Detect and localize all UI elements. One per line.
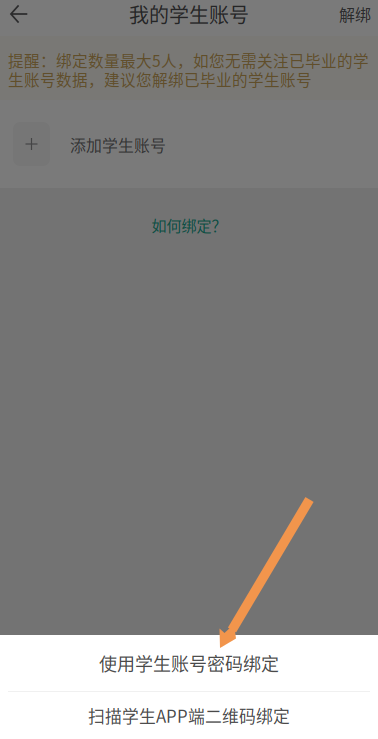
staticText: 如何绑定？ [151, 214, 226, 236]
staticText: 提醒：绑定数量最大5人，如您无需关注已毕业的学 [8, 49, 369, 72]
staticText: 扫描学生APP端二维码绑定 [88, 703, 290, 728]
staticText: 我的学生账号 [129, 0, 249, 28]
button[interactable]: 解绑 [332, 0, 378, 28]
button[interactable]: Back [0, 0, 38, 28]
button[interactable]: 如何绑定？ [0, 212, 378, 238]
staticText: 生账号数据，建议您解绑已毕业的学生账号 [8, 68, 312, 91]
button[interactable]: 扫描学生APP端二维码绑定 [0, 692, 378, 739]
staticText: 添加学生账号 [70, 133, 166, 156]
button[interactable]: 使用学生账号密码绑定 [0, 635, 378, 691]
staticText: 解绑 [339, 2, 371, 26]
staticText: 使用学生账号密码绑定 [99, 650, 279, 676]
button[interactable]: 添加学生账号 [0, 100, 378, 188]
